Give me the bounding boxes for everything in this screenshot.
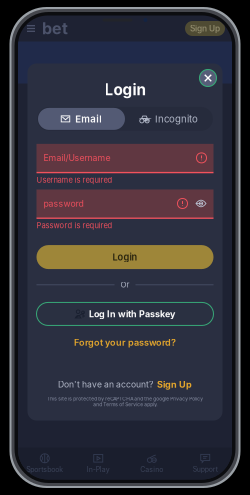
staticText: Or: [120, 280, 129, 289]
staticText: Sign Up: [157, 379, 192, 390]
staticText: Email: [75, 113, 102, 125]
staticText: Sportsbook: [26, 465, 63, 474]
staticText: Casino: [140, 465, 163, 474]
staticText: Login: [104, 80, 145, 99]
staticText: Forgot your password?: [74, 337, 176, 348]
staticText: Log In with Passkey: [89, 308, 175, 319]
button[interactable]: Login: [36, 245, 213, 269]
staticText: This site is protected by reCAPTCHA and …: [47, 396, 203, 407]
staticText: Sign Up: [190, 23, 220, 33]
button[interactable]: Forgot your password?: [74, 335, 176, 349]
staticText: Don't have an account?: [58, 379, 153, 389]
staticText: Email/Username: [43, 153, 110, 163]
staticText: Username is required: [36, 175, 112, 184]
staticText: Support: [193, 465, 218, 473]
staticText: Login: [112, 251, 137, 263]
button[interactable]: Casino: [125, 447, 178, 479]
staticText: bet: [42, 19, 68, 38]
button[interactable]: Log In with Passkey: [36, 302, 213, 325]
button[interactable]: Close: [196, 66, 219, 89]
button[interactable]: Menu: [25, 21, 37, 35]
button[interactable]: Sign Up: [185, 21, 225, 36]
button[interactable]: Email: [38, 108, 125, 130]
button[interactable]: Incognito: [125, 108, 212, 130]
staticText: Incognito: [155, 113, 198, 125]
staticText: Password is required: [36, 221, 112, 230]
button[interactable]: In-Play: [71, 447, 125, 479]
button[interactable]: Sportsbook: [18, 447, 71, 479]
staticText: password: [43, 198, 83, 209]
staticText: In-Play: [87, 465, 110, 474]
button[interactable]: Support: [178, 447, 232, 479]
button[interactable]: Sign Up: [157, 379, 192, 390]
